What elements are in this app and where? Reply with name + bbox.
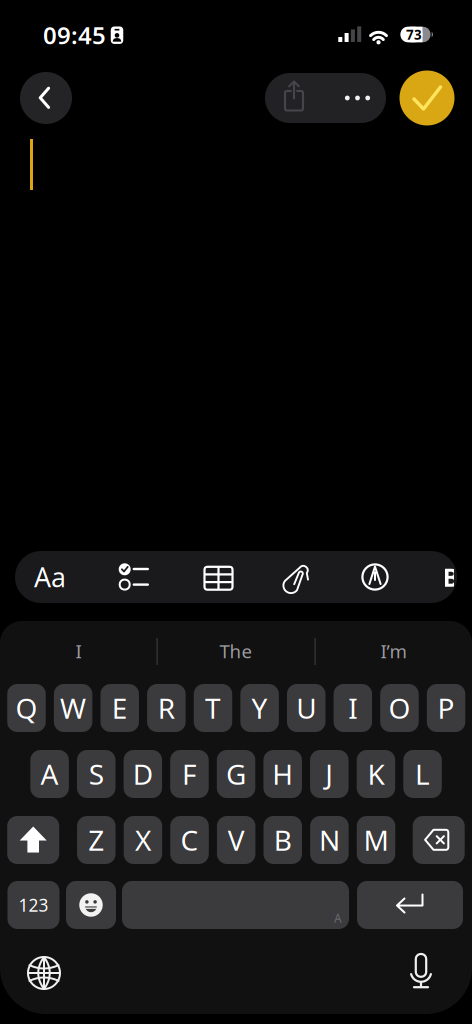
button[interactable]: Emoji — [66, 881, 116, 929]
button[interactable]: P — [427, 684, 465, 732]
button[interactable]: The — [161, 629, 311, 673]
staticText: W — [60, 689, 86, 727]
button[interactable]: C — [170, 816, 209, 864]
staticText: X — [135, 821, 151, 859]
button[interactable]: Shift — [7, 816, 59, 864]
button[interactable]: H — [263, 750, 302, 798]
button[interactable]: Table — [190, 552, 247, 604]
staticText: V — [228, 821, 245, 859]
staticText: A — [41, 755, 59, 793]
button[interactable]: N — [310, 816, 349, 864]
button[interactable]: E — [100, 684, 139, 732]
staticText: 73 — [406, 26, 422, 43]
staticText: R — [158, 689, 175, 727]
staticText: I — [348, 689, 357, 727]
button[interactable]: J — [310, 750, 349, 798]
button[interactable]: Format — [19, 551, 81, 603]
button[interactable]: T — [194, 684, 232, 732]
button[interactable]: Back — [20, 72, 72, 124]
button[interactable]: Share — [265, 73, 323, 123]
staticText: N — [319, 821, 340, 859]
button[interactable]: Q — [7, 684, 46, 732]
button[interactable]: I — [334, 684, 372, 732]
button[interactable]: K — [357, 750, 395, 798]
button[interactable]: More — [326, 73, 389, 123]
staticText: 09:45 — [43, 19, 106, 51]
button[interactable]: Delete — [413, 816, 465, 864]
staticText: J — [325, 755, 333, 793]
button[interactable]: R — [147, 684, 186, 732]
button[interactable]: D — [124, 750, 162, 798]
button[interactable]: Bold — [442, 560, 453, 594]
staticText: C — [180, 821, 198, 859]
button[interactable]: S — [77, 750, 115, 798]
button[interactable]: X — [124, 816, 162, 864]
button[interactable]: O — [380, 684, 419, 732]
button[interactable]: Attachment — [271, 551, 327, 603]
button[interactable]: V — [217, 816, 255, 864]
button[interactable]: G — [217, 750, 255, 798]
staticText: Aa — [34, 559, 66, 595]
staticText: D — [133, 755, 153, 793]
staticText: K — [367, 755, 384, 793]
staticText: I’m — [380, 639, 406, 663]
staticText: Z — [88, 821, 104, 859]
staticText: U — [296, 689, 316, 727]
button[interactable]: M — [357, 816, 395, 864]
staticText: T — [205, 689, 221, 727]
staticText: Q — [15, 689, 37, 727]
button[interactable]: Markup — [347, 551, 403, 603]
staticText: H — [272, 755, 293, 793]
staticText: Y — [252, 689, 268, 727]
button[interactable]: Done — [399, 70, 454, 125]
staticText: L — [415, 755, 430, 793]
button[interactable]: B — [263, 816, 302, 864]
staticText: P — [438, 689, 455, 727]
staticText: 123 — [18, 893, 48, 916]
staticText: F — [182, 755, 197, 793]
button[interactable]: Z — [77, 816, 115, 864]
staticText: B — [274, 821, 292, 859]
staticText: B — [442, 560, 459, 594]
button[interactable]: L — [403, 750, 442, 798]
button[interactable]: F — [170, 750, 209, 798]
button[interactable]: W — [54, 684, 92, 732]
staticText: I — [75, 639, 81, 663]
staticText: O — [388, 689, 410, 727]
button[interactable]: Y — [240, 684, 279, 732]
button[interactable]: U — [287, 684, 325, 732]
button[interactable]: I’m — [318, 629, 468, 673]
button[interactable]: Next keyboard — [16, 947, 72, 999]
button[interactable]: 123 — [7, 881, 59, 929]
button[interactable]: I — [3, 629, 153, 673]
button[interactable]: Checklist — [105, 550, 161, 602]
staticText: The — [219, 639, 252, 663]
button[interactable]: Space — [122, 881, 349, 929]
staticText: G — [226, 755, 246, 793]
staticText: E — [112, 689, 128, 727]
staticText: M — [363, 821, 388, 859]
button[interactable]: Dictate — [393, 947, 449, 999]
staticText: A — [334, 910, 342, 926]
button[interactable]: Return — [357, 881, 463, 929]
button[interactable]: A — [30, 750, 69, 798]
staticText: S — [89, 755, 104, 793]
